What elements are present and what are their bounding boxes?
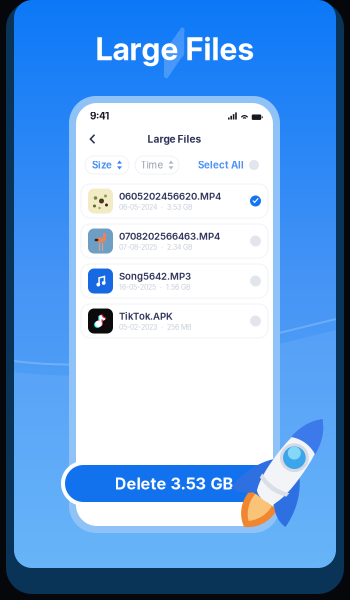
staticText: 07-08-2025 · 2.34 GB bbox=[119, 243, 193, 251]
staticText: Large Files bbox=[95, 30, 254, 67]
button[interactable]: Back bbox=[85, 132, 99, 146]
staticText: 0605202456620.MP4 bbox=[119, 190, 221, 202]
staticText: Time bbox=[140, 159, 163, 171]
button[interactable]: 0605202456620.MP4 bbox=[81, 184, 268, 218]
button[interactable]: Size bbox=[85, 156, 129, 174]
staticText: Delete 3.53 GB bbox=[114, 474, 233, 493]
button[interactable]: Song5642.MP3 bbox=[81, 264, 268, 298]
staticText: 0708202566463.MP4 bbox=[119, 230, 220, 242]
staticText: Large Files bbox=[147, 133, 201, 145]
button[interactable]: Select All bbox=[198, 159, 259, 171]
button[interactable]: 0708202566463.MP4 bbox=[81, 224, 268, 258]
staticText: 16-05-2025 · 1.56 GB bbox=[119, 283, 191, 291]
staticText: TikTok.APK bbox=[119, 310, 173, 322]
button[interactable]: Delete 3.53 GB bbox=[61, 461, 287, 506]
staticText: Size bbox=[92, 159, 112, 171]
staticText: 05-02-2023 · 256 MB bbox=[119, 323, 192, 331]
staticText: 9:41 bbox=[90, 110, 109, 122]
staticText: 06-05-2024 · 3.53 GB bbox=[119, 203, 193, 211]
staticText: Song5642.MP3 bbox=[119, 270, 191, 282]
button[interactable]: Time bbox=[135, 156, 179, 174]
button[interactable]: TikTok.APK bbox=[81, 304, 268, 338]
staticText: Select All bbox=[198, 159, 244, 171]
